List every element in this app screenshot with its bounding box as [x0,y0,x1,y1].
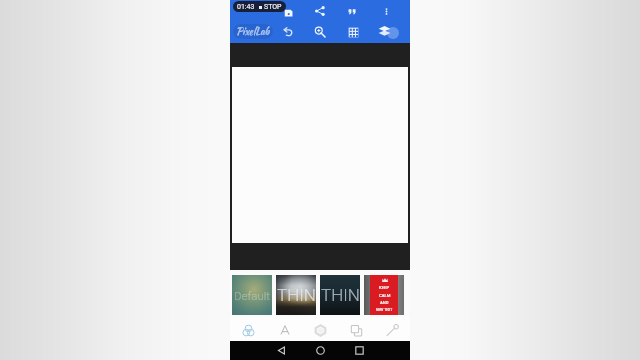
staticText: 01:43 [237,3,255,11]
button[interactable]: Home [313,343,328,358]
button[interactable]: Duplicate [347,321,366,340]
staticText: THIN [321,285,360,305]
staticText: PixelLab [236,24,270,39]
button[interactable]: Save [280,4,297,21]
staticText: KEEP [379,285,390,290]
button[interactable]: Zoom in [311,23,329,41]
button[interactable]: Shapes [311,321,330,340]
button[interactable]: KEEP [364,275,404,315]
staticText: STOP [264,3,282,11]
button[interactable]: Default [232,275,272,315]
button[interactable]: Quote [344,3,361,20]
button[interactable]: THIN [320,275,360,315]
button[interactable]: More options [378,3,395,20]
button[interactable]: Recording 01:43 stop [233,1,286,12]
button[interactable]: Brush [383,321,402,340]
staticText: CALM [379,293,391,298]
button[interactable]: Blend modes [239,321,258,340]
button[interactable]: Undo [279,23,297,41]
button[interactable]: Share [311,2,329,20]
staticText: Default [234,289,271,302]
button[interactable]: Back [274,343,289,358]
button[interactable]: THIN [276,275,316,315]
button[interactable]: Recents [352,343,367,358]
button[interactable]: Layers [375,21,394,40]
button[interactable]: Text [276,321,294,339]
staticText: AND [380,300,389,305]
button[interactable]: PixelLab [233,24,273,39]
staticText: NEW TEXT [376,308,393,312]
button[interactable]: Grid [345,24,362,41]
staticText: THIN [277,285,316,305]
